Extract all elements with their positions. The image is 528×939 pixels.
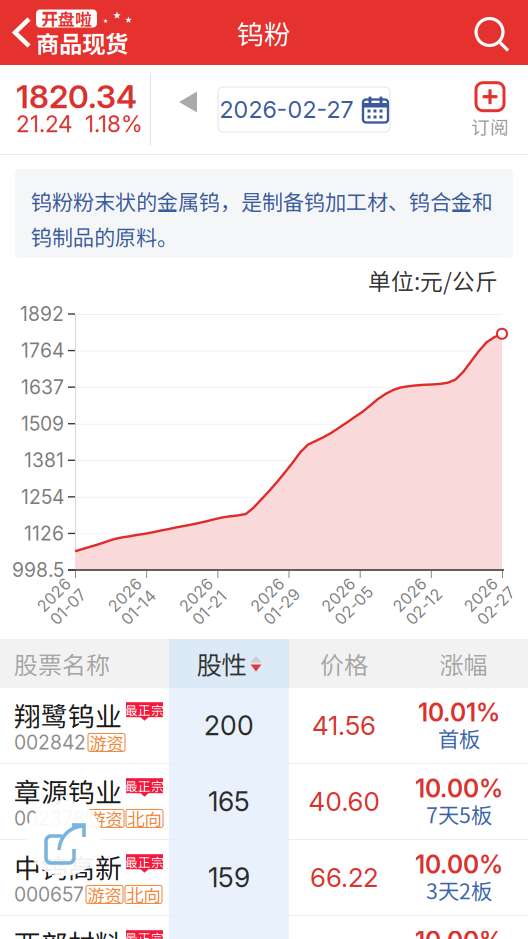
button[interactable]: 西部材料 bbox=[0, 916, 528, 939]
staticText: 1892 bbox=[20, 305, 64, 323]
staticText: 01-29 bbox=[250, 603, 294, 621]
staticText: 游资 bbox=[89, 733, 123, 752]
button[interactable]: Previous day bbox=[162, 76, 214, 128]
staticText: 开盘啦 bbox=[41, 9, 92, 28]
staticText: 2026-02-27 bbox=[219, 98, 353, 121]
staticText: 股票名称 bbox=[14, 650, 110, 677]
staticText: 1126 bbox=[24, 524, 64, 543]
staticText: 10.01% bbox=[418, 701, 500, 725]
staticText: 2026 bbox=[37, 584, 77, 603]
staticText: 钨粉粉末状的金属钨，是制备钨加工材、钨合金和钨制品的原料。 bbox=[31, 183, 493, 254]
staticText: 最正宗 bbox=[125, 702, 164, 717]
button[interactable]: 股性 bbox=[169, 639, 289, 688]
staticText: 10.00% bbox=[415, 929, 503, 939]
staticText: 最正宗 bbox=[125, 930, 164, 939]
staticText: 21.24 bbox=[16, 113, 73, 135]
staticText: 单位:元/公斤 bbox=[368, 267, 498, 293]
staticText: 10.00% bbox=[415, 853, 503, 877]
staticText: 2026 bbox=[250, 584, 290, 603]
staticText: 北向 bbox=[127, 809, 161, 828]
staticText: 1381 bbox=[24, 451, 64, 470]
staticText: 价格 bbox=[320, 650, 368, 677]
staticText: 200 bbox=[204, 713, 254, 738]
staticText: 股性 bbox=[196, 649, 246, 678]
staticText: 40.60 bbox=[308, 789, 379, 814]
staticText: 涨幅 bbox=[439, 650, 487, 677]
staticText: 1764 bbox=[21, 341, 64, 360]
staticText: 1.18% bbox=[85, 113, 143, 135]
staticText: 最正宗 bbox=[125, 854, 164, 869]
staticText: 165 bbox=[208, 789, 250, 814]
staticText: 66.22 bbox=[310, 865, 378, 890]
staticText: 998.5 bbox=[12, 561, 64, 579]
staticText: 1637 bbox=[21, 378, 64, 396]
staticText: 钨粉 bbox=[237, 17, 291, 48]
staticText: 41.56 bbox=[312, 713, 376, 738]
button[interactable]: Back bbox=[0, 0, 150, 65]
staticText: 中钨高新 bbox=[14, 851, 122, 882]
staticText: 1509 bbox=[21, 414, 64, 433]
staticText: 002378 bbox=[14, 809, 85, 828]
staticText: 首板 bbox=[438, 726, 480, 750]
staticText: 北向 bbox=[126, 885, 160, 904]
staticText: 翔鹭钨业 bbox=[14, 699, 122, 730]
button[interactable]: 价格 bbox=[289, 639, 399, 688]
staticText: 02-05 bbox=[322, 603, 369, 621]
staticText: 游资 bbox=[87, 885, 121, 904]
staticText: 章源钨业 bbox=[14, 775, 122, 806]
button[interactable]: Search bbox=[458, 0, 528, 65]
staticText: 2026 bbox=[393, 584, 433, 603]
staticText: 订阅 bbox=[471, 116, 509, 137]
staticText: 159 bbox=[208, 865, 250, 890]
staticText: 10.00% bbox=[415, 777, 503, 801]
staticText: 02-27 bbox=[464, 603, 510, 621]
staticText: 002842 bbox=[14, 733, 86, 752]
staticText: 3天2板 bbox=[426, 878, 492, 902]
staticText: 游资 bbox=[88, 809, 122, 828]
staticText: 7天5板 bbox=[426, 802, 492, 826]
button[interactable]: 翔鹭钨业 bbox=[0, 688, 528, 763]
staticText: 000657 bbox=[14, 885, 84, 904]
staticText: 2026 bbox=[464, 584, 504, 603]
button[interactable]: Share bbox=[26, 800, 102, 876]
staticText: 2026 bbox=[108, 584, 148, 603]
staticText: 2026 bbox=[179, 584, 219, 603]
staticText: 西部材料 bbox=[14, 927, 122, 939]
staticText: 1820.34 bbox=[16, 81, 137, 112]
staticText: 01-21 bbox=[179, 603, 220, 621]
staticText: 01-07 bbox=[37, 603, 80, 621]
button[interactable]: 订阅 bbox=[455, 80, 525, 140]
button[interactable]: 涨幅 bbox=[399, 639, 528, 688]
staticText: 商品现货 bbox=[36, 29, 128, 56]
staticText: 1254 bbox=[21, 487, 64, 506]
button[interactable]: 章源钨业 bbox=[0, 764, 528, 839]
staticText: 2026 bbox=[322, 584, 362, 603]
staticText: 02-12 bbox=[393, 603, 437, 621]
button[interactable]: 中钨高新 bbox=[0, 840, 528, 915]
staticText: 01-14 bbox=[108, 603, 149, 621]
staticText: 最正宗 bbox=[125, 778, 164, 793]
button[interactable]: 2026-02-27 bbox=[218, 87, 390, 132]
